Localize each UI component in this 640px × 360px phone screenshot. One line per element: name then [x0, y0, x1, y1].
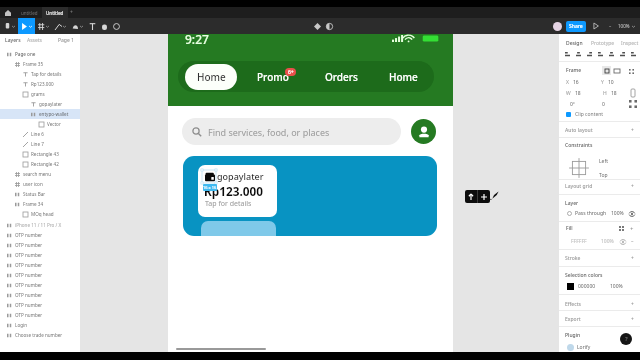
button[interactable]: Pass through — [559, 208, 640, 219]
button[interactable]: Align 2 — [573, 49, 584, 60]
staticText: iPhone 11 / 11 Pro / X — [15, 222, 62, 228]
button[interactable]: OTP number — [0, 230, 80, 240]
staticText: OTP number — [15, 282, 43, 288]
button[interactable]: Main menu — [1, 18, 18, 34]
button[interactable]: Prototype — [591, 40, 615, 47]
button[interactable]: – — [609, 23, 612, 29]
button[interactable]: Line 6 — [0, 129, 80, 139]
button[interactable]: Login — [0, 320, 80, 330]
button[interactable]: Help — [620, 333, 632, 345]
button[interactable]: Page 1 — [58, 37, 74, 44]
button[interactable]: gopaylater — [198, 165, 277, 217]
button[interactable]: Layout grid — [559, 180, 640, 193]
button[interactable]: Align 4 — [595, 49, 606, 60]
staticText: 0° — [570, 101, 576, 108]
button[interactable]: Text tool — [86, 18, 98, 34]
button[interactable]: MOq head — [0, 209, 80, 219]
button[interactable]: Add plugin — [478, 190, 490, 203]
button[interactable]: Frame 34 — [0, 199, 80, 209]
button[interactable]: OTP number — [0, 250, 80, 260]
button[interactable]: Portrait — [602, 66, 611, 75]
button[interactable]: Comment tool — [110, 18, 122, 34]
button[interactable]: Align 3 — [584, 49, 595, 60]
button[interactable]: Constraints — [559, 139, 640, 152]
button[interactable]: New tab — [66, 7, 76, 18]
button[interactable]: Dark mode — [323, 18, 335, 34]
button[interactable]: untitled — [16, 7, 42, 18]
button[interactable]: Layers — [5, 37, 21, 44]
button[interactable]: Effects — [559, 298, 640, 311]
button[interactable]: Rp123.000 — [0, 79, 80, 89]
button[interactable]: Design — [566, 40, 583, 47]
staticText: + — [631, 127, 634, 134]
button[interactable]: Hand tool — [98, 18, 110, 34]
button[interactable]: Account — [553, 22, 562, 31]
button[interactable]: Left — [599, 158, 608, 165]
button[interactable]: OTP number — [0, 270, 80, 280]
button[interactable]: Fill — [559, 223, 640, 234]
button[interactable]: OTP number — [0, 300, 80, 310]
button[interactable]: Assets — [27, 37, 43, 44]
button[interactable]: search menu — [0, 169, 80, 179]
button[interactable]: Align 7 — [628, 49, 639, 60]
button[interactable]: Share — [566, 21, 586, 32]
button[interactable]: Inspect — [621, 40, 639, 47]
button[interactable]: Align 5 — [606, 49, 617, 60]
button[interactable]: Orders — [310, 61, 372, 92]
button[interactable]: OTP number — [0, 260, 80, 270]
button[interactable]: Auto layout — [559, 124, 640, 137]
button[interactable]: Shape tool — [69, 18, 86, 34]
button[interactable]: 000000 — [559, 281, 640, 292]
button[interactable]: iPhone 11 / 11 Pro / X — [0, 220, 80, 230]
button[interactable]: Home — [372, 61, 434, 92]
button[interactable]: Home — [185, 64, 237, 90]
staticText: gopaylater — [217, 170, 264, 182]
button[interactable]: Account — [411, 119, 436, 144]
button[interactable]: Rocket — [490, 190, 499, 201]
button[interactable]: Lorify — [559, 342, 640, 353]
button[interactable]: OTP number — [0, 280, 80, 290]
button[interactable]: Selection colors — [559, 269, 640, 282]
button[interactable]: Tap for details — [0, 69, 80, 79]
button[interactable]: Resize to fit — [626, 66, 636, 76]
button[interactable]: user icon — [0, 179, 80, 189]
button[interactable]: entypo-wallet — [0, 109, 80, 119]
staticText: 100% — [611, 210, 624, 217]
button[interactable]: OTP number — [0, 240, 80, 250]
button[interactable]: Pen tool — [52, 18, 69, 34]
button[interactable]: Page one — [0, 49, 80, 59]
button[interactable]: Present — [591, 21, 601, 31]
button[interactable]: OTP number — [0, 290, 80, 300]
button[interactable]: Promo — [246, 61, 310, 92]
button[interactable]: Top — [599, 172, 608, 179]
button[interactable]: Find services, food, or places — [182, 118, 401, 145]
button[interactable]: Align 1 — [562, 49, 573, 60]
button[interactable]: Stroke — [559, 252, 640, 265]
staticText: grams — [31, 91, 45, 97]
button[interactable]: Frame tool — [35, 18, 52, 34]
button[interactable]: Frame 35 — [0, 59, 80, 69]
button[interactable]: Publish — [465, 190, 477, 203]
button[interactable]: Components — [311, 18, 323, 34]
button[interactable]: Rectangle 42 — [0, 159, 80, 169]
button[interactable]: Untitled — [42, 7, 68, 18]
button[interactable]: Clip content — [559, 109, 640, 120]
button[interactable]: 100% — [618, 23, 630, 29]
button[interactable]: Landscape — [611, 66, 622, 75]
button[interactable]: Move tool — [18, 18, 35, 34]
button[interactable]: Choose trade number — [0, 330, 80, 340]
button[interactable]: Line 7 — [0, 139, 80, 149]
button[interactable]: Align 6 — [617, 49, 628, 60]
staticText: 6+ — [288, 69, 294, 76]
button[interactable]: Vector — [0, 119, 80, 129]
button[interactable]: Export — [559, 313, 640, 326]
button[interactable]: Figma home — [0, 7, 16, 18]
button[interactable]: gopaylater — [183, 156, 437, 236]
button[interactable]: gopaylater — [0, 99, 80, 109]
button[interactable]: Status Bar — [0, 189, 80, 199]
button[interactable]: Plugin — [559, 329, 640, 342]
button[interactable]: Layer — [559, 197, 640, 210]
button[interactable]: grams — [0, 89, 80, 99]
button[interactable]: Rectangle 43 — [0, 149, 80, 159]
button[interactable]: OTP number — [0, 310, 80, 320]
